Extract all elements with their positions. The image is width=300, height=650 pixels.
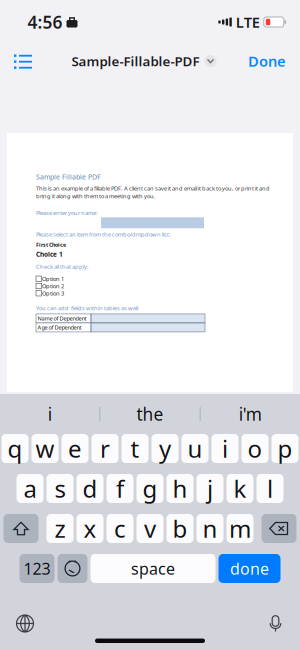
button[interactable]: d bbox=[76, 474, 103, 503]
staticText: t bbox=[130, 433, 139, 464]
button[interactable]: Next keyboard bbox=[0, 614, 34, 632]
button[interactable]: q bbox=[1, 434, 28, 463]
button[interactable]: the bbox=[100, 394, 200, 434]
staticText: Name of Dependent bbox=[37, 315, 86, 322]
button[interactable]: g bbox=[136, 474, 163, 503]
staticText: 4:56 bbox=[27, 10, 62, 33]
staticText: Option 1 bbox=[42, 275, 64, 283]
staticText: d bbox=[82, 473, 97, 504]
button[interactable]: u bbox=[181, 434, 208, 463]
staticText: q bbox=[7, 433, 22, 464]
button[interactable]: s bbox=[46, 474, 73, 503]
staticText: Option 2 bbox=[42, 282, 64, 290]
button[interactable]: a bbox=[16, 474, 43, 503]
button[interactable]: space bbox=[90, 554, 215, 583]
staticText: m bbox=[229, 513, 251, 544]
button[interactable]: n bbox=[196, 514, 223, 543]
staticText: Option 3 bbox=[42, 289, 64, 297]
button[interactable]: j bbox=[196, 474, 223, 503]
button[interactable]: m bbox=[226, 514, 253, 543]
staticText: space bbox=[131, 558, 175, 579]
staticText: bring it along with them to a meeting wi… bbox=[36, 192, 156, 200]
button[interactable]: t bbox=[121, 434, 148, 463]
staticText: i'm bbox=[239, 402, 262, 425]
button[interactable]: x bbox=[76, 514, 103, 543]
button[interactable]: v bbox=[136, 514, 163, 543]
staticText: Sample Fillable PDF bbox=[36, 172, 101, 181]
button[interactable]: w bbox=[31, 434, 58, 463]
button[interactable]: h bbox=[166, 474, 193, 503]
button[interactable]: e bbox=[61, 434, 88, 463]
staticText: s bbox=[54, 473, 65, 504]
button[interactable]: 123 bbox=[19, 554, 54, 583]
staticText: k bbox=[233, 473, 246, 504]
staticText: Check all that apply: bbox=[36, 263, 89, 270]
staticText: i bbox=[48, 402, 52, 425]
button[interactable]: b bbox=[166, 514, 193, 543]
staticText: First Choice bbox=[36, 241, 66, 248]
button[interactable]: done bbox=[218, 554, 280, 583]
staticText: u bbox=[187, 433, 202, 464]
button[interactable]: k bbox=[226, 474, 253, 503]
button[interactable]: o bbox=[241, 434, 268, 463]
button[interactable]: y bbox=[151, 434, 178, 463]
button[interactable]: l bbox=[256, 474, 283, 503]
button[interactable]: Emoji bbox=[57, 554, 87, 583]
staticText: r bbox=[100, 433, 110, 464]
button[interactable]: f bbox=[106, 474, 133, 503]
button[interactable]: z bbox=[46, 514, 73, 543]
button[interactable]: Done bbox=[240, 43, 300, 79]
staticText: This is an example of a fillable PDF. A … bbox=[36, 184, 270, 192]
button[interactable]: i bbox=[0, 394, 99, 434]
staticText: e bbox=[68, 433, 82, 464]
button[interactable]: i bbox=[211, 434, 238, 463]
button[interactable]: r bbox=[91, 434, 118, 463]
staticText: y bbox=[159, 433, 171, 464]
staticText: l bbox=[267, 473, 273, 504]
staticText: b bbox=[172, 513, 187, 544]
staticText: v bbox=[144, 513, 156, 544]
button[interactable]: p bbox=[271, 434, 298, 463]
staticText: h bbox=[172, 473, 187, 504]
button[interactable]: Sample-Fillable-PDF bbox=[71, 43, 216, 79]
staticText: LTE bbox=[236, 12, 260, 32]
staticText: Please enter your name: bbox=[36, 209, 98, 217]
button[interactable]: Delete bbox=[261, 514, 296, 543]
button[interactable]: i'm bbox=[201, 394, 300, 434]
staticText: c bbox=[114, 513, 126, 544]
staticText: done bbox=[230, 558, 269, 579]
button[interactable]: Outline bbox=[0, 43, 48, 79]
staticText: 123 bbox=[23, 558, 50, 579]
staticText: i bbox=[222, 433, 228, 464]
staticText: n bbox=[202, 513, 217, 544]
staticText: x bbox=[83, 513, 96, 544]
staticText: a bbox=[23, 473, 36, 504]
button[interactable]: Dictation bbox=[269, 615, 300, 632]
staticText: Choice 1 bbox=[36, 250, 63, 259]
staticText: j bbox=[207, 473, 213, 504]
staticText: Age of Dependent bbox=[37, 324, 81, 331]
staticText: p bbox=[277, 433, 292, 464]
staticText: Sample-Fillable-PDF bbox=[71, 52, 199, 70]
staticText: o bbox=[247, 433, 262, 464]
staticText: the bbox=[136, 402, 163, 425]
button[interactable]: Shift bbox=[3, 514, 38, 543]
staticText: z bbox=[54, 513, 65, 544]
staticText: Done bbox=[248, 51, 286, 71]
staticText: You can add fields within tables as well bbox=[36, 304, 138, 312]
staticText: Please select an item from the combo/dro… bbox=[36, 230, 171, 238]
staticText: w bbox=[35, 433, 54, 464]
staticText: f bbox=[116, 473, 124, 504]
button[interactable]: c bbox=[106, 514, 133, 543]
staticText: g bbox=[142, 473, 157, 504]
